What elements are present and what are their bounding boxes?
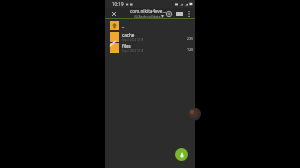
staticText: 10:19 bbox=[112, 1, 124, 7]
staticText: com.nikita4eve... bbox=[130, 8, 167, 14]
button[interactable]: files bbox=[105, 42, 195, 53]
button[interactable]: Close bbox=[109, 9, 118, 18]
button[interactable]: View mode bbox=[175, 9, 184, 18]
button[interactable]: Add bbox=[175, 148, 188, 161]
staticText: 120 bbox=[187, 47, 194, 52]
staticText: Sep 2, 2024 10:18 bbox=[122, 38, 144, 42]
button[interactable]: More options bbox=[184, 9, 193, 18]
staticText: Sep 2, 2024 10:18 bbox=[122, 49, 144, 53]
staticText: .. bbox=[122, 23, 125, 29]
staticText: files bbox=[122, 43, 131, 49]
staticText: /0/Android/data bbox=[134, 14, 161, 18]
button[interactable]: cache bbox=[105, 31, 195, 42]
staticText: cache bbox=[122, 32, 135, 38]
button[interactable]: Settings bbox=[164, 9, 173, 18]
staticText: 235 bbox=[187, 36, 194, 41]
button[interactable]: .. bbox=[105, 20, 195, 31]
